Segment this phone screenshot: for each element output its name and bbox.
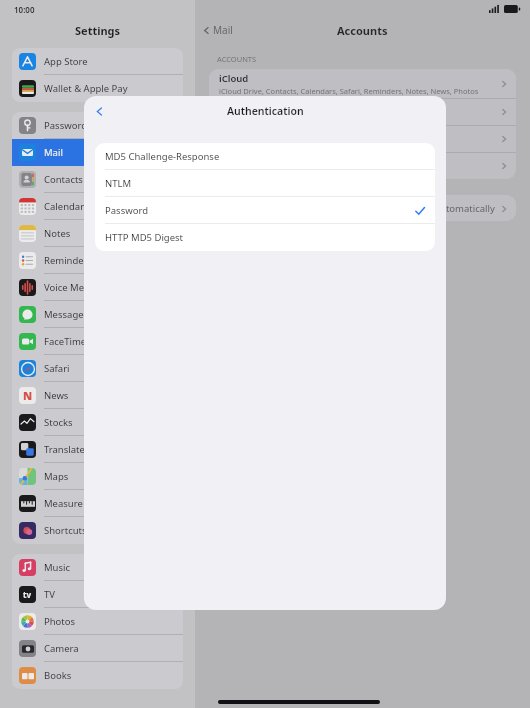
staticText: Passwords [44, 119, 92, 132]
staticText: Wallet & Apple Pay [44, 82, 128, 95]
staticText: Stocks [44, 416, 73, 429]
button[interactable]: Music [12, 554, 183, 581]
button[interactable]: Messages [12, 301, 183, 328]
staticText: HTTP MD5 Digest [105, 231, 184, 244]
button[interactable]: Camera [12, 635, 183, 662]
staticText: Authentication [227, 104, 304, 118]
button[interactable]: App Store [12, 48, 183, 75]
button[interactable]: Wallet & Apple Pay [12, 75, 183, 102]
button[interactable]: N [12, 382, 183, 409]
button[interactable]: Shortcuts [12, 517, 183, 544]
button[interactable]: tv [12, 581, 183, 608]
button[interactable]: Translate [12, 436, 183, 463]
staticText: ACCOUNTS [217, 54, 257, 64]
staticText: tv [23, 589, 32, 600]
button[interactable]: Books [12, 662, 183, 689]
button[interactable] [209, 99, 516, 125]
staticText: Automatically [434, 202, 495, 215]
staticText: Calendar [44, 200, 85, 213]
staticText: Camera [44, 642, 79, 655]
staticText: Voice Memos [44, 281, 104, 294]
staticText: Photos [44, 615, 76, 628]
staticText: Measure [44, 497, 83, 510]
staticText: Translate [44, 443, 85, 456]
staticText: Contacts [44, 173, 83, 186]
staticText: 10:00 [14, 4, 35, 15]
button[interactable]: Maps [12, 463, 183, 490]
button[interactable]: Safari [12, 355, 183, 382]
button[interactable]: Reminders [12, 247, 183, 274]
staticText: Safari [44, 362, 70, 375]
staticText: News [44, 389, 69, 402]
staticText: iCloud [219, 72, 249, 85]
button[interactable]: FaceTime [12, 328, 183, 355]
button[interactable]: MD5 Challenge-Response [95, 143, 435, 170]
button[interactable]: Voice Memos [12, 274, 183, 301]
staticText: Shortcuts [44, 524, 87, 537]
staticText: Notes [44, 227, 71, 240]
button[interactable]: Photos [12, 608, 183, 635]
staticText: Mail [213, 23, 233, 37]
button[interactable]: Measure [12, 490, 183, 517]
staticText: Messages [44, 308, 89, 321]
button[interactable]: Back [88, 100, 110, 122]
staticText: Books [44, 669, 72, 682]
button[interactable]: iCloud [209, 69, 516, 98]
staticText: App Store [44, 55, 88, 68]
button[interactable]: Mail [202, 23, 233, 37]
button[interactable]: Notes [12, 220, 183, 247]
staticText: Reminders [44, 254, 93, 267]
button[interactable] [209, 126, 516, 152]
staticText: Mail [44, 146, 63, 159]
button[interactable]: NTLM [95, 170, 435, 197]
staticText: NTLM [105, 177, 132, 190]
button[interactable]: Mail [12, 139, 183, 166]
staticText: Maps [44, 470, 69, 483]
staticText: Password [105, 204, 148, 217]
staticText: FaceTime [44, 335, 87, 348]
button[interactable]: Automatically [209, 195, 516, 221]
staticText: Accounts [337, 23, 388, 38]
button[interactable]: Calendar [12, 193, 183, 220]
button[interactable]: Passwords [12, 112, 183, 139]
staticText: Music [44, 561, 71, 574]
button[interactable]: HTTP MD5 Digest [95, 224, 435, 251]
button[interactable]: Stocks [12, 409, 183, 436]
staticText: iCloud Drive, Contacts, Calendars, Safar… [219, 86, 490, 96]
staticText: TV [44, 588, 55, 601]
staticText: MD5 Challenge-Response [105, 150, 220, 163]
staticText: Settings [75, 23, 121, 38]
button[interactable]: Contacts [12, 166, 183, 193]
button[interactable]: Password [95, 197, 435, 224]
staticText: N [23, 388, 33, 403]
button[interactable] [209, 153, 516, 179]
